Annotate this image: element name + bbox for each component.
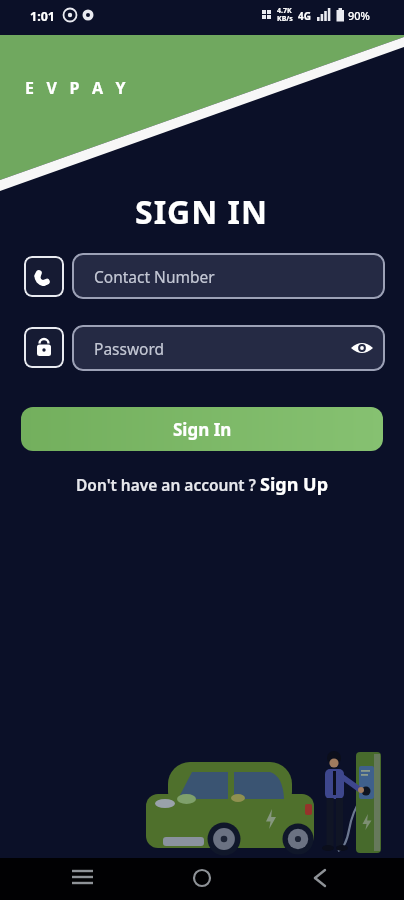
staticText: 1:01 [30,8,55,25]
button[interactable]: Sign Up [260,472,329,497]
staticText: Don't have an account ? [76,474,260,495]
staticText: Contact Number [94,266,215,287]
button[interactable] [24,256,64,297]
staticText: Sign In [173,418,232,441]
button[interactable] [341,325,385,371]
staticText: 90% [348,8,370,23]
staticText: 4G [298,9,311,23]
staticText: 4.7K [277,6,292,16]
button[interactable]: Password [72,325,385,371]
staticText: Password [94,338,165,359]
button[interactable]: Contact Number [72,253,385,299]
staticText: KB/s [277,14,293,24]
button[interactable] [24,327,64,368]
button[interactable]: Sign In [21,407,383,451]
staticText: SIGN IN [135,190,269,234]
staticText: E V P A Y [25,77,130,99]
